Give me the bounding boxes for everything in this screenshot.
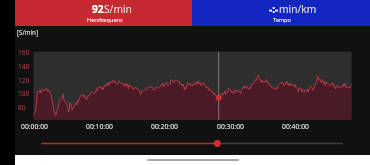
staticText: [S/min] bbox=[17, 28, 38, 36]
staticText: 160 bbox=[18, 48, 30, 57]
staticText: 120 bbox=[18, 76, 30, 85]
staticText: 00:20:00 bbox=[151, 122, 178, 131]
button[interactable]: Seek position bbox=[35, 136, 350, 151]
button[interactable]: Tempo bbox=[192, 0, 370, 26]
staticText: 00:30:00 bbox=[217, 122, 244, 131]
staticText: Tempo bbox=[273, 16, 291, 24]
staticText: 140 bbox=[18, 62, 30, 71]
staticText: 00:40:00 bbox=[282, 122, 309, 131]
button[interactable]: Herzfrequenz bbox=[15, 0, 192, 26]
staticText: 80 bbox=[18, 103, 26, 112]
staticText: 00:10:00 bbox=[86, 122, 113, 131]
staticText: min/km bbox=[279, 2, 317, 16]
staticText: -:- bbox=[269, 2, 279, 16]
staticText: 00:00:00 bbox=[21, 122, 48, 131]
staticText: Herzfrequenz bbox=[87, 16, 123, 24]
staticText: 92 bbox=[92, 2, 104, 16]
staticText: S/min bbox=[104, 2, 132, 16]
staticText: 100 bbox=[18, 89, 30, 98]
